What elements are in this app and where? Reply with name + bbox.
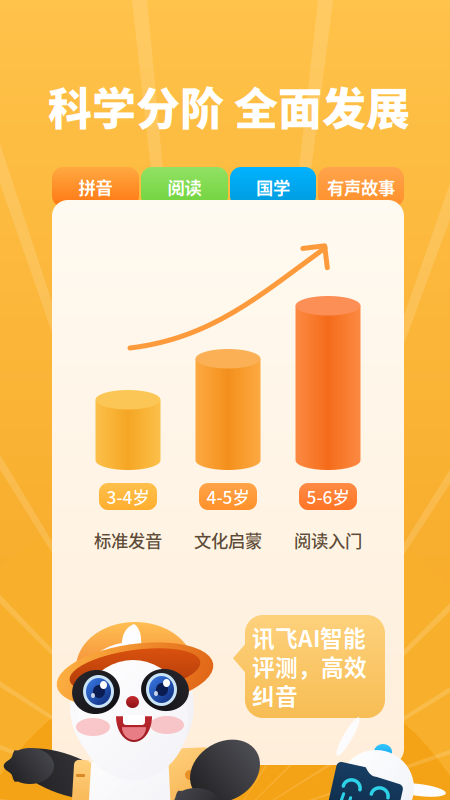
staticText: 文化启蒙 xyxy=(194,527,262,553)
staticText: 3-4岁 xyxy=(106,484,149,509)
staticText: 阅读入门 xyxy=(294,527,362,553)
staticText: 拼音 xyxy=(78,174,112,200)
staticText: 有声故事 xyxy=(327,174,395,200)
staticText: 讯飞AI智能 xyxy=(252,621,366,653)
staticText: 国学 xyxy=(256,174,290,200)
button[interactable]: 国学 xyxy=(230,167,316,207)
staticText: 科学分阶 全面发展 xyxy=(48,74,410,138)
staticText: 纠音 xyxy=(252,679,298,711)
staticText: 阅读 xyxy=(167,174,201,200)
staticText: 评测，高效 xyxy=(252,650,367,682)
staticText: 5-6岁 xyxy=(306,484,349,509)
button[interactable]: 阅读 xyxy=(141,167,228,207)
staticText: 4-5岁 xyxy=(206,484,249,509)
button[interactable]: 拼音 xyxy=(52,167,139,207)
staticText: 标准发音 xyxy=(94,527,162,553)
button[interactable]: 有声故事 xyxy=(318,167,404,207)
